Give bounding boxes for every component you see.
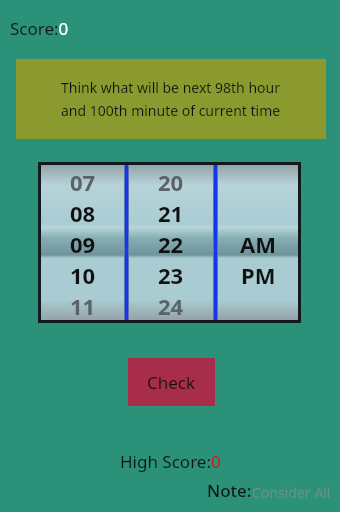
staticText: 10 [70, 260, 96, 290]
button[interactable]: High Score:0 [0, 450, 340, 473]
staticText: 09 [70, 229, 96, 259]
staticText: Consider All [252, 483, 331, 502]
staticText: 11 [70, 291, 96, 321]
staticText: High Score:0 [120, 450, 221, 473]
button[interactable]: Think what will be next 98th hour and 10… [16, 59, 326, 139]
staticText: PM [241, 260, 276, 290]
button[interactable]: PM [218, 259, 298, 290]
staticText: 08 [70, 198, 96, 228]
staticText: 23 [158, 260, 184, 290]
button[interactable]: 21 [129, 197, 213, 228]
staticText: 07 [70, 167, 96, 197]
button[interactable]: Check [128, 358, 215, 406]
button[interactable]: 22 [129, 228, 213, 259]
staticText: 21 [158, 198, 184, 228]
button[interactable]: Score:0 [10, 17, 69, 40]
staticText: AM [240, 229, 276, 259]
button[interactable]: 23 [129, 259, 213, 290]
staticText: Check [147, 371, 196, 394]
button[interactable]: 20 [129, 166, 213, 197]
staticText: 24 [158, 291, 184, 321]
button[interactable]: 09 [41, 228, 124, 259]
button[interactable]: 07 [41, 166, 124, 197]
staticText: Note: [207, 479, 252, 502]
button[interactable]: AM [218, 228, 298, 259]
button[interactable]: 11 [41, 290, 124, 321]
staticText: 20 [158, 167, 184, 197]
button[interactable]: 10 [41, 259, 124, 290]
staticText: Think what will be next 98th hour and 10… [61, 78, 281, 120]
button[interactable]: Note: [0, 479, 331, 502]
staticText: 22 [158, 229, 184, 259]
button[interactable]: 08 [41, 197, 124, 228]
button[interactable]: 24 [129, 290, 213, 321]
staticText: Score:0 [10, 17, 69, 40]
